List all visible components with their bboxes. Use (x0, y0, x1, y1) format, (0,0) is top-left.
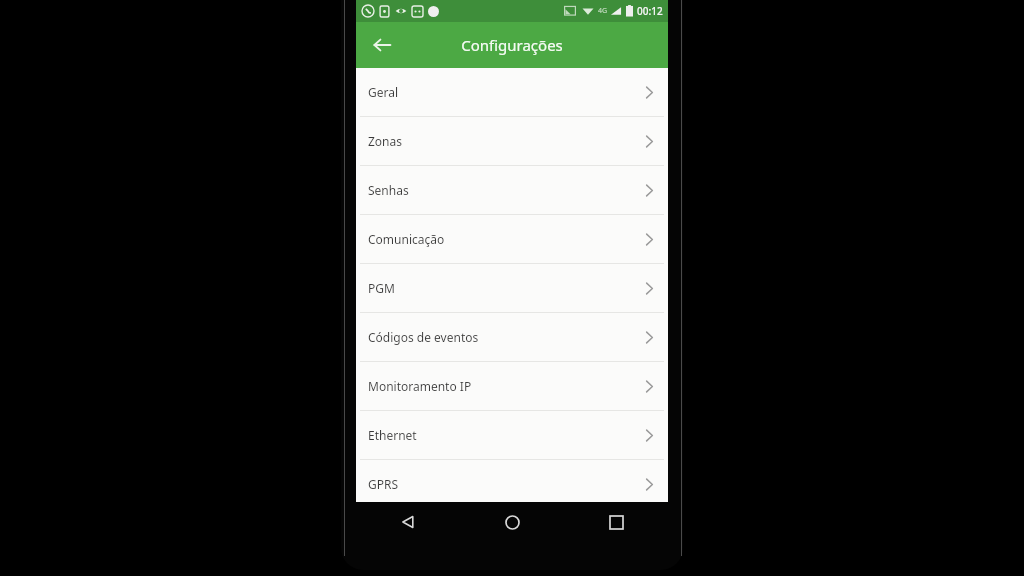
button[interactable]: Zonas (356, 117, 668, 165)
button[interactable]: Início (460, 502, 564, 542)
button[interactable]: GPRS (356, 460, 668, 508)
button[interactable]: PGM (356, 264, 668, 312)
button[interactable]: Monitoramento IP (356, 362, 668, 410)
button[interactable]: Voltar (364, 27, 400, 63)
staticText: Senhas (368, 182, 645, 198)
button[interactable]: Ethernet (356, 411, 668, 459)
staticText: Ethernet (368, 427, 645, 443)
button[interactable]: Comunicação (356, 215, 668, 263)
button[interactable]: Voltar (356, 502, 460, 542)
staticText: GPRS (368, 476, 645, 492)
staticText: 00:12 (637, 4, 663, 18)
button[interactable]: Códigos de eventos (356, 313, 668, 361)
staticText: Configurações (461, 35, 563, 55)
staticText: Zonas (368, 133, 645, 149)
staticText: Comunicação (368, 231, 645, 247)
staticText: Geral (368, 84, 645, 100)
button[interactable]: Recentes (564, 502, 668, 542)
staticText: Monitoramento IP (368, 378, 645, 394)
button[interactable]: Senhas (356, 166, 668, 214)
staticText: Códigos de eventos (368, 329, 645, 345)
button[interactable]: Geral (356, 68, 668, 116)
staticText: PGM (368, 280, 645, 296)
staticText: 4G (598, 6, 608, 16)
